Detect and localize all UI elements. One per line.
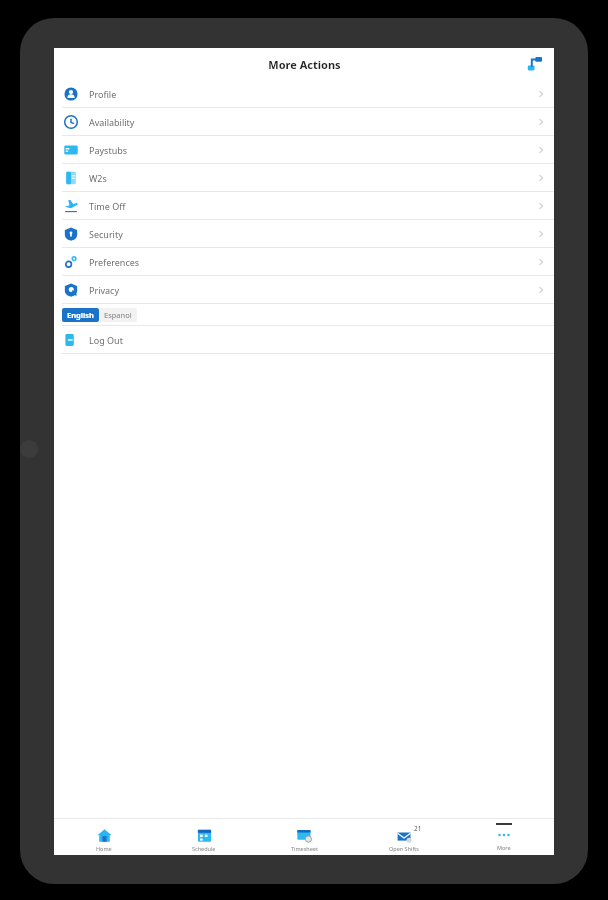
staticText: Profile: [89, 88, 117, 100]
staticText: Paystubs: [89, 144, 128, 156]
button[interactable]: More: [454, 819, 554, 855]
staticText: Privacy: [89, 284, 120, 296]
staticText: Timesheet: [291, 845, 318, 852]
button[interactable]: Log Out: [54, 326, 554, 354]
button[interactable]: Availability: [54, 108, 554, 136]
button[interactable]: Espanol: [99, 308, 137, 322]
button[interactable]: W2s: [54, 164, 554, 192]
button[interactable]: Timesheet: [254, 819, 354, 855]
button[interactable]: Share: [524, 53, 546, 75]
staticText: Schedule: [192, 845, 216, 852]
staticText: Home: [96, 845, 112, 852]
button[interactable]: Paystubs: [54, 136, 554, 164]
staticText: Availability: [89, 116, 135, 128]
button[interactable]: 21: [354, 819, 454, 855]
button[interactable]: Privacy: [54, 276, 554, 304]
staticText: 21: [414, 824, 422, 833]
staticText: Security: [89, 228, 123, 240]
staticText: Preferences: [89, 256, 140, 268]
button[interactable]: Profile: [54, 80, 554, 108]
staticText: English: [67, 310, 94, 320]
staticText: W2s: [89, 172, 107, 184]
staticText: Time Off: [89, 200, 126, 212]
button[interactable]: Preferences: [54, 248, 554, 276]
staticText: Open Shifts: [389, 845, 419, 852]
button[interactable]: Home: [54, 819, 154, 855]
button[interactable]: Time Off: [54, 192, 554, 220]
staticText: Espanol: [104, 310, 132, 320]
staticText: More Actions: [268, 57, 341, 72]
staticText: More: [497, 844, 511, 851]
button[interactable]: Security: [54, 220, 554, 248]
staticText: Log Out: [89, 334, 123, 346]
button[interactable]: Schedule: [154, 819, 254, 855]
button[interactable]: English: [62, 308, 99, 322]
